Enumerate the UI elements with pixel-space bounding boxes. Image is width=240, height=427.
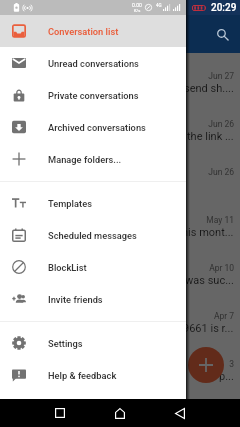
button[interactable]: Templates xyxy=(0,187,186,219)
button[interactable]: May 11 xyxy=(0,215,240,263)
button[interactable]: Apr 10 xyxy=(0,263,240,311)
staticText: BlockList xyxy=(48,262,87,273)
staticText: Private conversations xyxy=(48,90,139,101)
button[interactable]: Jun 26 xyxy=(0,119,240,167)
staticText: Settings xyxy=(48,338,83,349)
button[interactable]: 3 xyxy=(0,359,240,407)
staticText: his mont... xyxy=(182,226,234,239)
button[interactable]: Help & feedback xyxy=(0,359,186,391)
staticText: May 11 xyxy=(206,215,234,225)
button[interactable]: New conversation xyxy=(188,347,224,383)
staticText: Apr 7 xyxy=(213,311,234,321)
button[interactable]: Jun 27 xyxy=(0,71,240,119)
staticText: 9661 is r... xyxy=(183,322,234,335)
button[interactable]: Recents xyxy=(46,399,74,427)
button[interactable]: Manage folders... xyxy=(0,143,186,175)
staticText: was suc... xyxy=(185,274,234,287)
staticText: Templates xyxy=(48,198,92,209)
staticText: 3 xyxy=(229,359,234,369)
staticText: Jun 26 xyxy=(208,167,234,177)
button[interactable]: Search xyxy=(210,22,234,46)
button[interactable]: Conversation list xyxy=(0,15,186,47)
button[interactable]: Archived conversations xyxy=(0,111,186,143)
button[interactable]: Invite friends xyxy=(0,283,186,315)
button[interactable]: BlockList xyxy=(0,251,186,283)
staticText: Conversation list xyxy=(48,26,119,37)
staticText: 0.00 xyxy=(132,2,142,8)
staticText: p... xyxy=(219,370,234,383)
staticText: Invite friends xyxy=(48,294,103,305)
staticText: Archived conversations xyxy=(48,122,146,133)
button[interactable]: Private conversations xyxy=(0,79,186,111)
staticText: Help & feedback xyxy=(48,370,117,381)
button[interactable]: Apr 7 xyxy=(0,311,240,359)
staticText: Jun 26 xyxy=(208,119,234,129)
button[interactable]: Settings xyxy=(0,327,186,359)
staticText: Jun 27 xyxy=(208,71,234,81)
staticText: the link ... xyxy=(187,130,234,143)
staticText: Manage folders... xyxy=(48,154,122,165)
button[interactable]: Jun 26 xyxy=(0,167,240,215)
staticText: 20:29 xyxy=(211,2,237,14)
staticText: Unread conversations xyxy=(48,58,139,69)
staticText: send sh.... xyxy=(184,82,234,95)
staticText: Scheduled messages xyxy=(48,230,137,241)
staticText: Apr 10 xyxy=(209,263,234,273)
button[interactable]: Back xyxy=(166,399,194,427)
button[interactable]: Unread conversations xyxy=(0,47,186,79)
button[interactable]: Scheduled messages xyxy=(0,219,186,251)
staticText: 4G xyxy=(156,3,162,8)
button[interactable]: Home xyxy=(106,399,134,427)
staticText: K/s xyxy=(134,8,141,13)
